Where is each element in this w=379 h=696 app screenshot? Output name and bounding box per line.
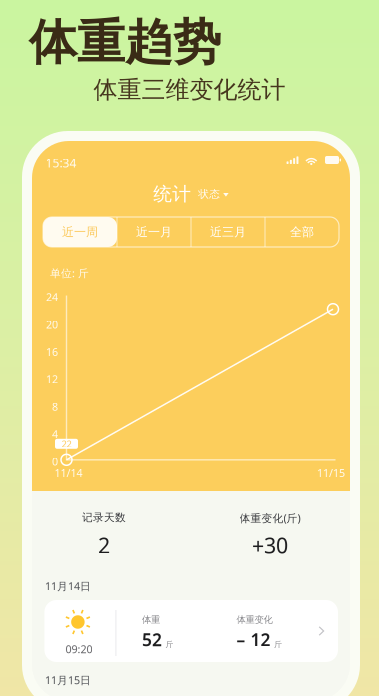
staticText: 近一周 (62, 225, 98, 239)
staticText: 状态 (198, 187, 220, 200)
button[interactable]: 全部 (265, 217, 339, 247)
staticText: 15:34 (45, 155, 76, 171)
staticText: 4 (52, 427, 58, 441)
button[interactable]: 近一周 (43, 217, 117, 247)
staticText: 斤 (165, 640, 173, 649)
staticText: 09:20 (65, 642, 92, 656)
staticText: – 12 (236, 628, 270, 651)
button[interactable]: 近一月 (117, 217, 191, 247)
staticText: 全部 (290, 225, 314, 239)
staticText: 2 (98, 531, 110, 559)
staticText: 11/15 (317, 466, 345, 480)
staticText: 体重趋势 (29, 13, 221, 72)
staticText: 12 (46, 372, 58, 386)
staticText: 24 (46, 290, 58, 304)
staticText: 统计 (153, 182, 191, 205)
staticText: 20 (46, 317, 58, 332)
staticText: 0 (52, 454, 58, 468)
staticText: 记录天数 (82, 511, 126, 524)
staticText: 近一月 (136, 225, 172, 239)
staticText: 8 (52, 399, 58, 414)
staticText: 近三月 (210, 225, 246, 239)
button[interactable]: 状态 (198, 187, 229, 200)
staticText: 52 (142, 628, 162, 651)
staticText: 11月14日 (45, 579, 91, 593)
staticText: 单位: 斤 (50, 266, 89, 280)
staticText: 体重变化(斤) (240, 511, 301, 525)
staticText: 斤 (274, 640, 282, 649)
staticText: 11/14 (54, 466, 82, 480)
staticText: 22 (61, 438, 71, 450)
staticText: 16 (46, 345, 58, 359)
staticText: 体重三维变化统计 (93, 75, 285, 104)
staticText: 体重变化 (236, 614, 272, 625)
staticText: 11月15日 (45, 673, 91, 687)
button[interactable]: 09:20 (44, 600, 338, 662)
staticText: +30 (252, 531, 288, 559)
staticText: 体重 (142, 614, 160, 625)
button[interactable]: 近三月 (191, 217, 265, 247)
